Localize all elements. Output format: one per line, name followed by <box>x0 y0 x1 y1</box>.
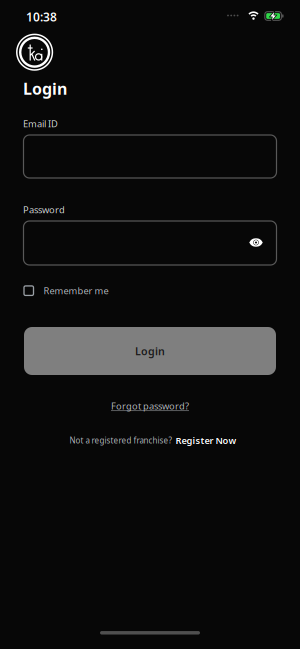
button[interactable]: Remember me <box>24 284 108 297</box>
staticText: Forgot password? <box>111 400 189 412</box>
staticText: Email ID <box>23 117 58 130</box>
staticText: Remember me <box>43 284 108 297</box>
staticText: 10:38 <box>26 9 57 25</box>
staticText: Password <box>23 203 65 216</box>
button[interactable]: Forgot password? <box>111 400 189 412</box>
button[interactable]: Email ID <box>23 135 276 178</box>
staticText: Login <box>135 344 165 358</box>
button[interactable]: Show password <box>249 238 263 247</box>
button[interactable]: Login <box>24 327 276 375</box>
staticText: Register Now <box>175 434 236 447</box>
button[interactable]: Password <box>23 221 276 265</box>
staticText: Not a registered franchise? <box>69 435 171 446</box>
staticText: Login <box>23 78 67 99</box>
button[interactable]: Register Now <box>175 434 236 447</box>
